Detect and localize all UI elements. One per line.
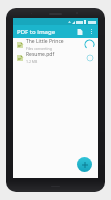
button[interactable]: More options [87, 27, 96, 36]
staticText: The Little Prince [26, 38, 64, 45]
button[interactable]: Open file [74, 26, 85, 37]
button[interactable]: Add PDF [77, 157, 92, 172]
staticText: Files converting [26, 46, 52, 51]
button[interactable]: The Little Prince [13, 38, 98, 51]
staticText: PDF to image [17, 28, 56, 36]
button[interactable]: Resume.pdf [13, 51, 98, 64]
staticText: 1.2 MB [26, 59, 38, 64]
button[interactable]: Queued [84, 52, 95, 63]
staticText: Resume.pdf [26, 51, 55, 58]
button[interactable]: Converting [84, 39, 95, 50]
